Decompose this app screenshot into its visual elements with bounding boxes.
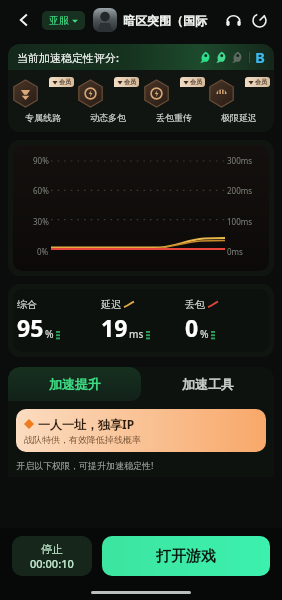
staticText: 0ms bbox=[227, 246, 243, 257]
button[interactable]: 会员 bbox=[12, 78, 74, 123]
button[interactable]: 会员 bbox=[208, 78, 270, 123]
staticText: 战队特供，有效降低掉线概率 bbox=[24, 434, 141, 445]
staticText: 19 bbox=[101, 312, 128, 343]
staticText: 加速提升 bbox=[49, 376, 101, 392]
staticText: % bbox=[200, 327, 209, 341]
button[interactable]: Back bbox=[10, 6, 38, 34]
staticText: 会员 bbox=[190, 78, 202, 86]
button[interactable]: 一人一址，独享IP bbox=[16, 409, 266, 452]
staticText: 00:00:10 bbox=[30, 556, 74, 571]
button[interactable]: Refresh bbox=[246, 7, 272, 33]
button[interactable]: 加速工具 bbox=[141, 367, 274, 401]
button[interactable]: 会员 bbox=[143, 78, 205, 123]
staticText: 会员 bbox=[255, 78, 267, 86]
staticText: 动态多包 bbox=[90, 112, 126, 123]
staticText: 300ms bbox=[227, 155, 253, 166]
staticText: 30% bbox=[33, 216, 49, 227]
button[interactable]: 打开游戏 bbox=[102, 536, 270, 576]
staticText: 专属线路 bbox=[25, 112, 61, 123]
button[interactable]: 会员 bbox=[77, 78, 139, 123]
staticText: 极限延迟 bbox=[221, 112, 257, 123]
staticText: 丢包重传 bbox=[156, 112, 192, 123]
staticText: 会员 bbox=[59, 78, 71, 86]
staticText: 停止 bbox=[41, 542, 63, 556]
staticText: 加速工具 bbox=[182, 376, 234, 392]
button[interactable]: 综合 bbox=[17, 298, 97, 343]
staticText: 一人一址，独享IP bbox=[38, 416, 135, 432]
button[interactable]: 停止 bbox=[12, 536, 92, 576]
staticText: 亚服 bbox=[49, 14, 69, 27]
staticText: 丢包 bbox=[185, 298, 205, 311]
button[interactable]: 亚服 bbox=[42, 11, 85, 30]
staticText: 开启以下权限，可提升加速稳定性! bbox=[16, 459, 154, 471]
staticText: 100ms bbox=[227, 216, 253, 227]
button[interactable]: Support bbox=[220, 7, 246, 33]
staticText: 综合 bbox=[17, 298, 37, 311]
staticText: ms bbox=[129, 327, 144, 341]
button[interactable]: 丢包 bbox=[185, 298, 265, 343]
staticText: B bbox=[255, 47, 265, 67]
staticText: 90% bbox=[33, 155, 49, 166]
staticText: % bbox=[45, 327, 54, 341]
button[interactable]: 延迟 bbox=[101, 298, 181, 343]
staticText: 打开游戏 bbox=[156, 547, 216, 566]
staticText: 0% bbox=[37, 246, 49, 257]
staticText: 200ms bbox=[227, 185, 253, 196]
staticText: 会员 bbox=[124, 78, 136, 86]
staticText: 暗区突围（国际 bbox=[123, 13, 207, 28]
staticText: 当前加速稳定性评分: bbox=[17, 50, 119, 65]
button[interactable]: 加速提升 bbox=[8, 367, 141, 401]
staticText: 95 bbox=[17, 312, 44, 343]
staticText: 0 bbox=[185, 312, 199, 343]
staticText: 延迟 bbox=[101, 298, 121, 311]
staticText: 60% bbox=[33, 185, 49, 196]
